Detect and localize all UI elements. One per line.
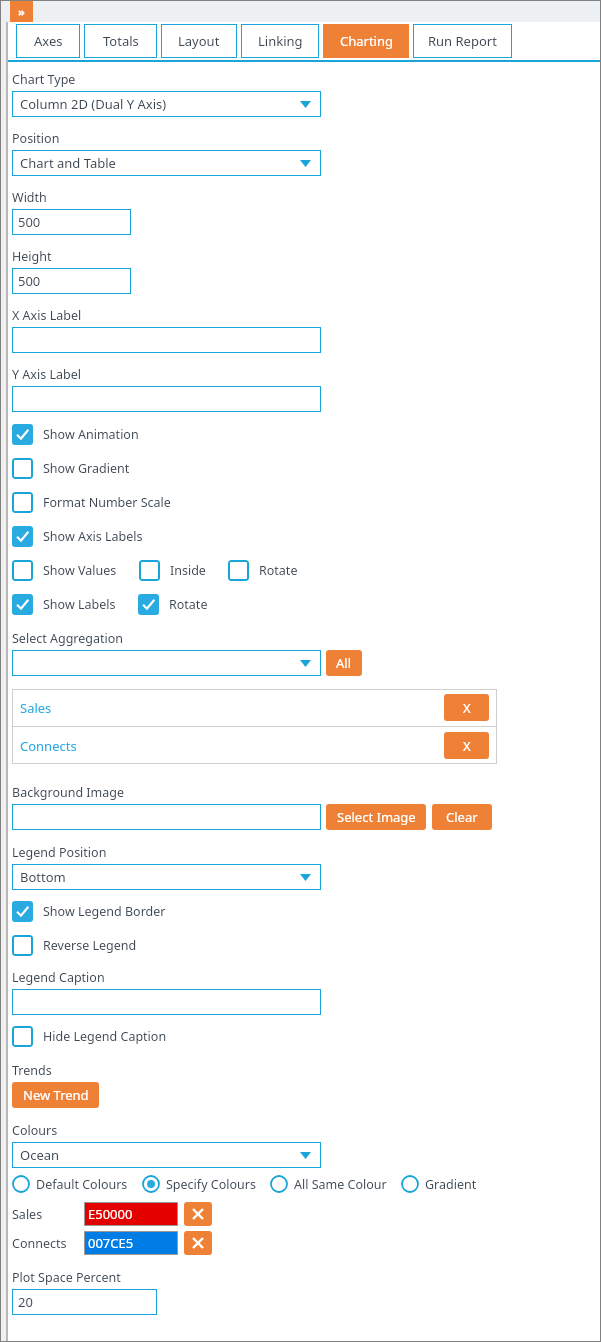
staticText: Chart and Table xyxy=(20,154,116,172)
staticText: E50000 xyxy=(88,1205,133,1223)
staticText: Chart Type xyxy=(12,71,76,88)
button[interactable]: Specify Colours xyxy=(142,1175,256,1193)
button[interactable]: Show Animation xyxy=(12,423,139,446)
staticText: Position xyxy=(12,130,60,147)
staticText: Run Report xyxy=(428,32,497,50)
staticText: Rotate xyxy=(259,562,298,579)
button[interactable]: Clear xyxy=(432,804,492,830)
button[interactable]: X xyxy=(444,694,489,721)
button[interactable]: Show Labels xyxy=(12,593,116,616)
staticText: Connects xyxy=(12,1235,67,1252)
staticText: Format Number Scale xyxy=(43,494,171,511)
button[interactable]: Expand xyxy=(10,0,33,22)
staticText: Show Labels xyxy=(43,596,116,613)
staticText: Height xyxy=(12,248,52,265)
staticText: All xyxy=(336,654,352,672)
staticText: Totals xyxy=(103,32,139,50)
button[interactable]: 20 xyxy=(12,1289,157,1315)
staticText: Sales xyxy=(12,1206,43,1223)
button[interactable]: Column 2D (Dual Y Axis) xyxy=(12,91,321,117)
staticText: 007CE5 xyxy=(88,1234,134,1252)
staticText: Default Colours xyxy=(36,1176,128,1193)
staticText: X xyxy=(463,737,471,755)
button[interactable]: Hide Legend Caption xyxy=(12,1025,167,1048)
button[interactable]: Show Values xyxy=(12,559,117,582)
button[interactable]: Totals xyxy=(84,24,157,58)
staticText: Sales xyxy=(20,699,52,717)
button[interactable]: X xyxy=(444,732,489,759)
button[interactable]: Layout xyxy=(161,24,237,58)
staticText: Reverse Legend xyxy=(43,937,137,954)
button[interactable]: Charting xyxy=(323,24,409,58)
staticText: Specify Colours xyxy=(166,1176,256,1193)
staticText: 20 xyxy=(18,1293,33,1311)
staticText: Gradient xyxy=(425,1176,477,1193)
button[interactable]: Connects xyxy=(12,727,497,764)
button[interactable]: 007CE5 xyxy=(84,1231,178,1255)
staticText: Background Image xyxy=(12,784,125,801)
staticText: » xyxy=(18,4,25,19)
staticText: Show Legend Border xyxy=(43,903,166,920)
button[interactable] xyxy=(12,804,321,830)
staticText: Linking xyxy=(258,32,303,50)
staticText: Width xyxy=(12,189,47,206)
button[interactable]: Inside xyxy=(139,559,206,582)
button[interactable]: Format Number Scale xyxy=(12,491,171,514)
staticText: Hide Legend Caption xyxy=(43,1028,167,1045)
button[interactable] xyxy=(12,650,321,676)
button[interactable]: All Same Colour xyxy=(270,1175,387,1193)
staticText: All Same Colour xyxy=(294,1176,387,1193)
staticText: Colours xyxy=(12,1122,58,1139)
button[interactable]: Reverse Legend xyxy=(12,934,137,957)
button[interactable]: Rotate xyxy=(138,593,208,616)
button[interactable]: Gradient xyxy=(401,1175,477,1193)
staticText: Rotate xyxy=(169,596,208,613)
button[interactable]: Ocean xyxy=(12,1142,321,1168)
button[interactable]: 500 xyxy=(12,209,131,235)
staticText: Layout xyxy=(178,32,220,50)
staticText: Legend Caption xyxy=(12,969,105,986)
staticText: Select Image xyxy=(337,808,416,826)
button[interactable] xyxy=(12,989,321,1015)
button[interactable]: Remove Sales colour xyxy=(184,1202,212,1226)
staticText: Y Axis Label xyxy=(12,366,81,383)
staticText: Charting xyxy=(340,32,393,50)
staticText: Show Gradient xyxy=(43,460,130,477)
staticText: New Trend xyxy=(23,1086,89,1104)
staticText: Show Animation xyxy=(43,426,139,443)
button[interactable]: Chart and Table xyxy=(12,150,321,176)
button[interactable] xyxy=(12,386,321,412)
button[interactable]: Axes xyxy=(16,24,80,58)
staticText: X xyxy=(463,699,471,717)
staticText: Bottom xyxy=(20,868,66,886)
button[interactable]: Show Gradient xyxy=(12,457,130,480)
button[interactable]: 500 xyxy=(12,268,131,294)
staticText: Axes xyxy=(34,32,63,50)
staticText: Ocean xyxy=(20,1146,60,1164)
button[interactable]: Run Report xyxy=(413,24,512,58)
staticText: Trends xyxy=(12,1062,52,1079)
button[interactable]: Default Colours xyxy=(12,1175,128,1193)
button[interactable]: Show Legend Border xyxy=(12,900,166,923)
staticText: Clear xyxy=(446,808,478,826)
staticText: X Axis Label xyxy=(12,307,82,324)
button[interactable]: Select Image xyxy=(326,804,426,830)
button[interactable]: All xyxy=(326,650,362,676)
staticText: Legend Position xyxy=(12,844,107,861)
button[interactable]: Rotate xyxy=(228,559,298,582)
staticText: 500 xyxy=(18,272,41,290)
button[interactable]: Show Axis Labels xyxy=(12,525,143,548)
staticText: 500 xyxy=(18,213,41,231)
button[interactable]: E50000 xyxy=(84,1202,178,1226)
staticText: Select Aggregation xyxy=(12,630,124,647)
button[interactable]: Bottom xyxy=(12,864,321,890)
button[interactable]: Remove Connects colour xyxy=(184,1231,212,1255)
staticText: Connects xyxy=(20,737,77,755)
staticText: Column 2D (Dual Y Axis) xyxy=(20,95,167,113)
button[interactable] xyxy=(12,327,321,353)
button[interactable]: Sales xyxy=(12,689,497,726)
button[interactable]: Linking xyxy=(241,24,319,58)
button[interactable]: New Trend xyxy=(12,1082,99,1108)
staticText: Inside xyxy=(170,562,206,579)
staticText: Show Values xyxy=(43,562,117,579)
